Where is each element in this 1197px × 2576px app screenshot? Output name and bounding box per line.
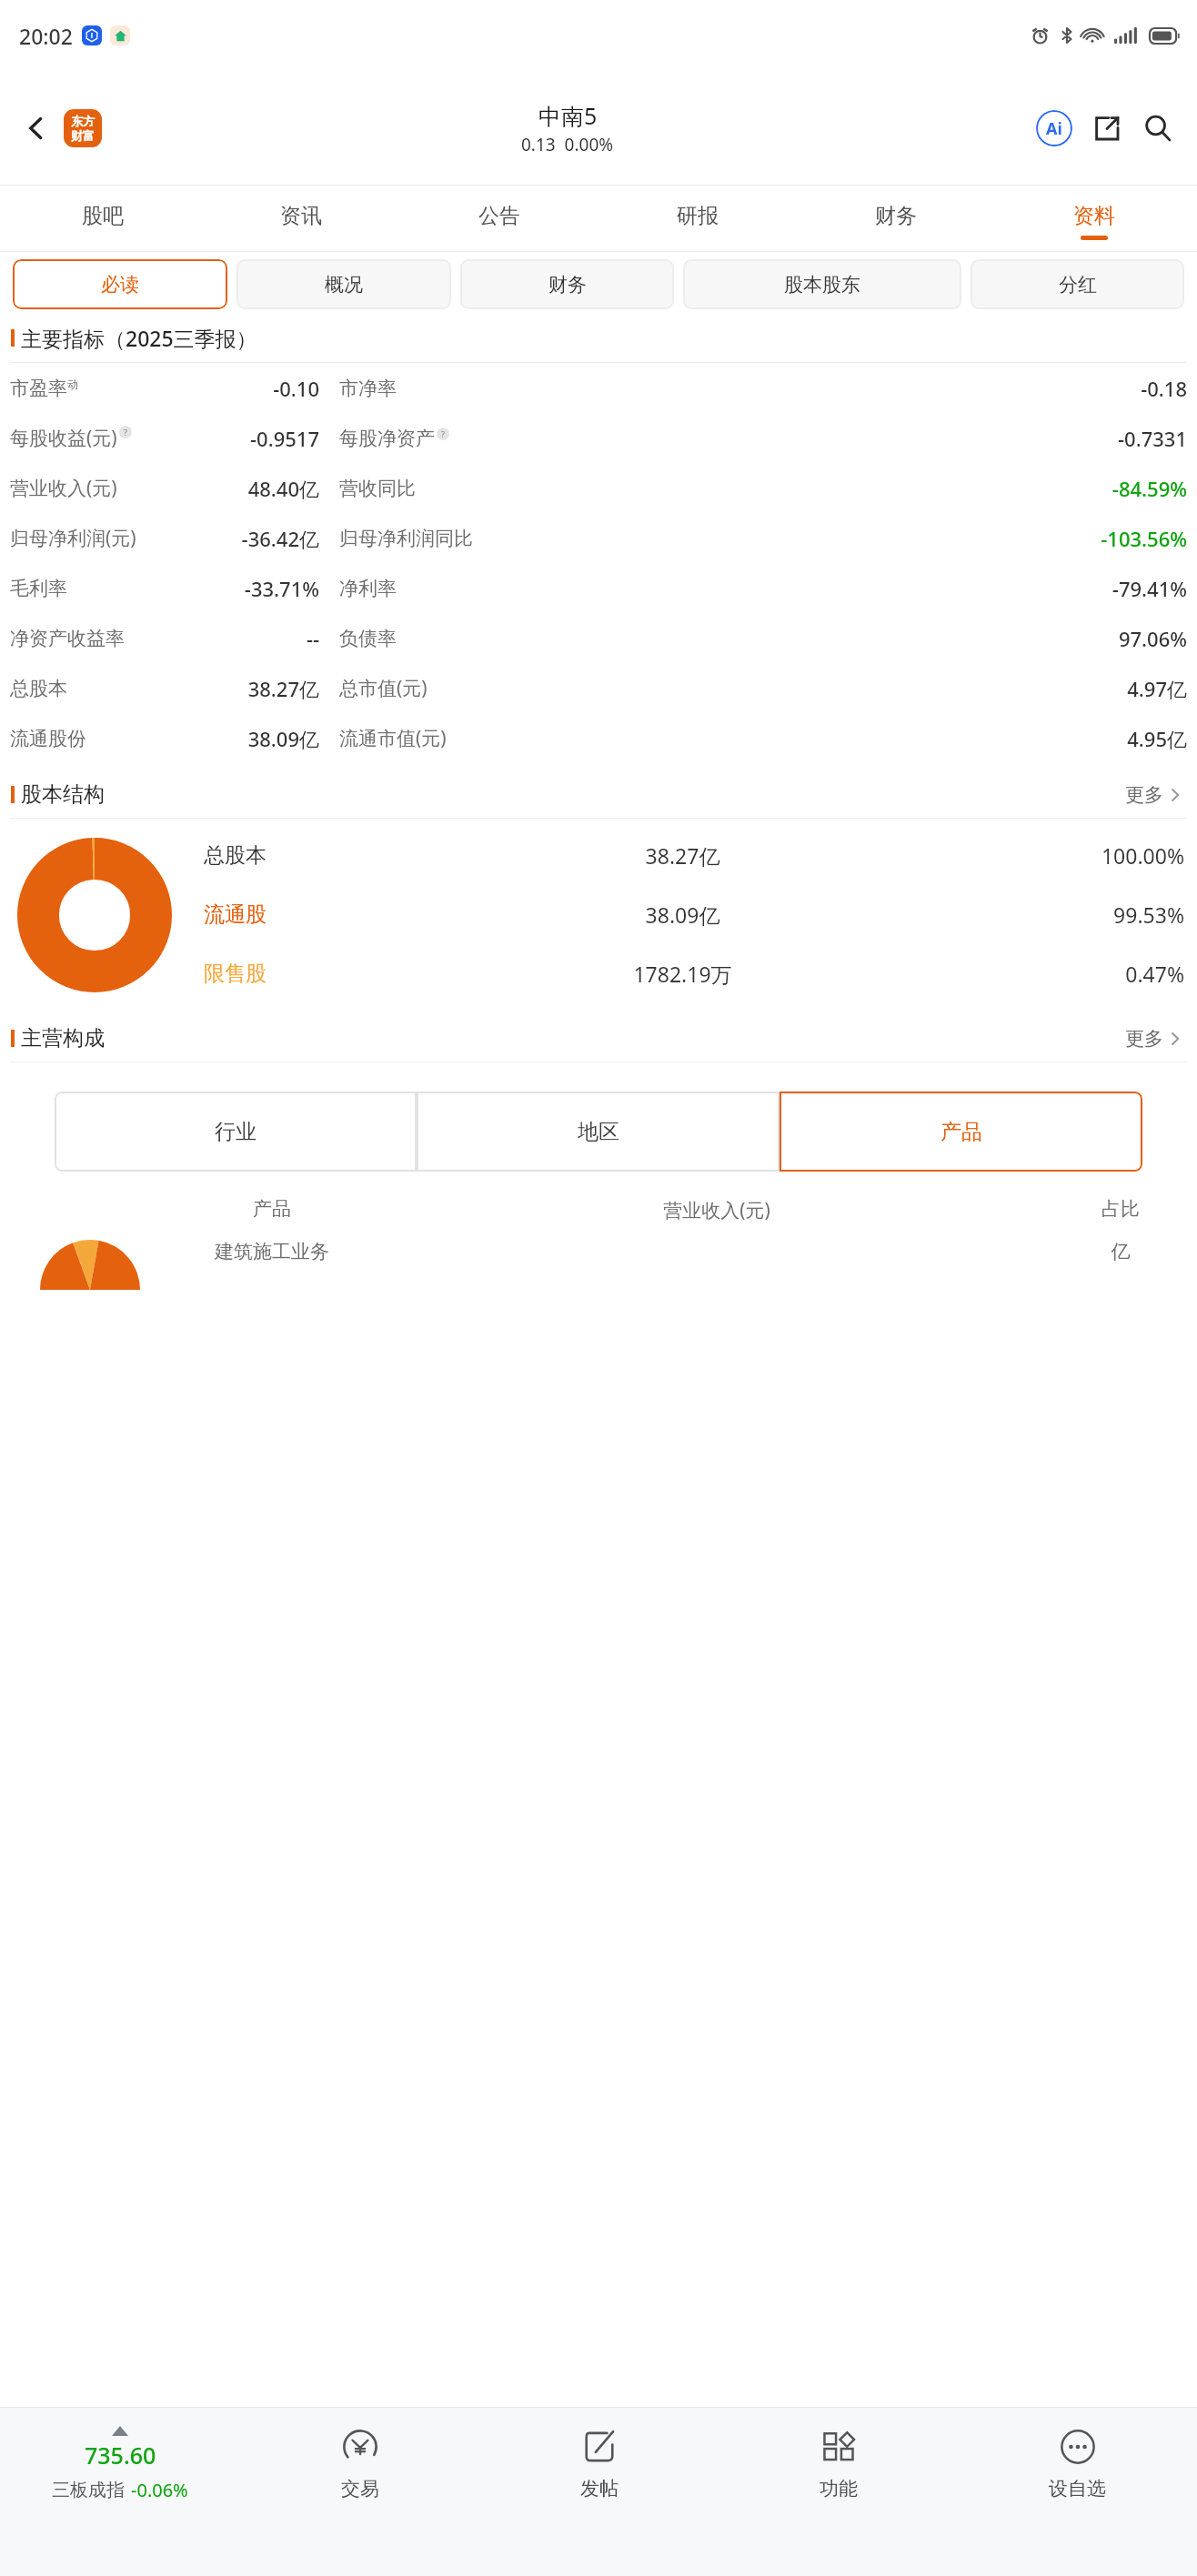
staticText: 4.95亿 bbox=[571, 725, 1187, 752]
button[interactable]: 735.60 bbox=[0, 2408, 240, 2576]
button[interactable]: 资料 bbox=[995, 185, 1193, 252]
staticText: 中南5 bbox=[538, 100, 598, 131]
staticText: 行业 bbox=[215, 1119, 256, 1145]
button[interactable]: 发帖 bbox=[479, 2408, 719, 2576]
staticText: 营业收入(元) bbox=[10, 475, 117, 501]
staticText: -0.18 bbox=[571, 375, 1187, 402]
button[interactable]: 股吧 bbox=[4, 185, 202, 252]
staticText: -- bbox=[178, 625, 319, 652]
button[interactable]: 地区 bbox=[417, 1092, 780, 1172]
staticText: 分红 bbox=[1059, 273, 1097, 297]
button[interactable]: 设自选 bbox=[958, 2408, 1197, 2576]
staticText: 市盈率 bbox=[10, 377, 67, 400]
staticText: 流通股 bbox=[204, 901, 327, 928]
staticText: 动 bbox=[67, 377, 78, 391]
staticText: 股本股东 bbox=[784, 273, 860, 297]
staticText: 三板成指 bbox=[52, 2479, 125, 2501]
staticText: 占比 bbox=[1057, 1197, 1184, 1221]
staticText: 97.06% bbox=[571, 625, 1187, 652]
staticText: 财务 bbox=[548, 273, 587, 297]
button[interactable]: 必读 bbox=[13, 259, 227, 309]
staticText: 功能 bbox=[820, 2477, 858, 2501]
staticText: 毛利率 bbox=[10, 577, 67, 600]
button[interactable]: 财务 bbox=[460, 259, 674, 309]
staticText: -0.7331 bbox=[571, 425, 1187, 452]
button[interactable]: 分红 bbox=[971, 259, 1184, 309]
staticText: 总市值(元) bbox=[339, 675, 427, 701]
staticText: 99.53% bbox=[1039, 901, 1184, 929]
staticText: 更多 bbox=[1125, 783, 1163, 807]
staticText: 100.00% bbox=[1039, 841, 1184, 870]
staticText: 东方 bbox=[71, 114, 95, 128]
button[interactable]: Search bbox=[1137, 107, 1179, 149]
staticText: ? bbox=[441, 428, 445, 439]
staticText: 交易 bbox=[341, 2477, 379, 2501]
staticText: Ai bbox=[1046, 117, 1062, 140]
staticText: -36.42亿 bbox=[178, 525, 319, 552]
button[interactable]: 概况 bbox=[236, 259, 451, 309]
staticText: 必读 bbox=[101, 273, 139, 297]
staticText: 股吧 bbox=[82, 203, 124, 229]
staticText: -0.06% bbox=[131, 2478, 188, 2502]
staticText: 735.60 bbox=[85, 2440, 156, 2470]
button[interactable]: AI bbox=[1033, 107, 1075, 149]
staticText: 地区 bbox=[578, 1119, 619, 1145]
staticText: 概况 bbox=[325, 273, 363, 297]
staticText: 净资产收益率 bbox=[10, 627, 125, 650]
staticText: 38.09亿 bbox=[178, 725, 319, 752]
staticText: 流通市值(元) bbox=[339, 725, 447, 751]
staticText: 营业收入(元) bbox=[377, 1197, 1057, 1223]
staticText: 每股收益(元) bbox=[10, 425, 117, 451]
staticText: 净利率 bbox=[339, 577, 397, 600]
button[interactable]: 更多 bbox=[1125, 1027, 1182, 1051]
staticText: 每股净资产 bbox=[339, 427, 435, 450]
staticText: -84.59% bbox=[571, 475, 1187, 502]
staticText: 公告 bbox=[478, 203, 520, 229]
staticText: 归母净利润同比 bbox=[339, 527, 473, 550]
staticText: 38.27亿 bbox=[327, 841, 1039, 870]
button[interactable]: 股本股东 bbox=[683, 259, 961, 309]
button[interactable]: 公告 bbox=[400, 185, 598, 252]
staticText: 主要指标（2025三季报） bbox=[21, 324, 257, 352]
staticText: 归母净利润(元) bbox=[10, 525, 136, 551]
button[interactable]: 交易 bbox=[240, 2408, 479, 2576]
staticText: 负债率 bbox=[339, 627, 397, 650]
staticText: 4.97亿 bbox=[571, 675, 1187, 702]
staticText: 设自选 bbox=[1049, 2477, 1106, 2501]
staticText: -33.71% bbox=[178, 575, 319, 602]
button[interactable]: 财务 bbox=[797, 185, 995, 252]
staticText: 亿 bbox=[1057, 1240, 1184, 1263]
staticText: 38.27亿 bbox=[178, 675, 319, 702]
staticText: -0.9517 bbox=[178, 425, 319, 452]
staticText: 48.40亿 bbox=[178, 475, 319, 502]
staticText: 20:02 bbox=[19, 22, 73, 50]
button[interactable]: Share bbox=[1086, 107, 1128, 149]
staticText: 建筑施工业务 bbox=[167, 1240, 377, 1263]
staticText: 产品 bbox=[167, 1197, 377, 1221]
staticText: 研报 bbox=[677, 203, 719, 229]
staticText: 流通股份 bbox=[10, 727, 86, 750]
staticText: -0.10 bbox=[178, 375, 319, 402]
staticText: 总股本 bbox=[204, 842, 327, 869]
button[interactable]: 研报 bbox=[598, 185, 797, 252]
staticText: 主营构成 bbox=[21, 1025, 105, 1052]
staticText: 0.47% bbox=[1039, 960, 1184, 988]
staticText: 0.13 0.00% bbox=[521, 133, 614, 156]
staticText: 1782.19万 bbox=[327, 960, 1039, 988]
staticText: -103.56% bbox=[571, 525, 1187, 552]
staticText: 产品 bbox=[940, 1119, 982, 1145]
button[interactable]: Back bbox=[13, 105, 60, 152]
staticText: 资讯 bbox=[280, 203, 322, 229]
button[interactable]: 行业 bbox=[55, 1092, 417, 1172]
button[interactable]: 资讯 bbox=[202, 185, 400, 252]
button[interactable]: 更多 bbox=[1125, 783, 1182, 807]
staticText: 限售股 bbox=[204, 961, 327, 987]
button[interactable]: 功能 bbox=[719, 2408, 958, 2576]
staticText: 总股本 bbox=[10, 677, 67, 700]
button[interactable]: 产品 bbox=[780, 1092, 1142, 1172]
staticText: 更多 bbox=[1125, 1027, 1163, 1051]
button[interactable]: 东方财富 bbox=[64, 109, 102, 147]
staticText: 市净率 bbox=[339, 377, 397, 400]
staticText: ? bbox=[124, 427, 127, 438]
staticText: 38.09亿 bbox=[327, 901, 1039, 929]
